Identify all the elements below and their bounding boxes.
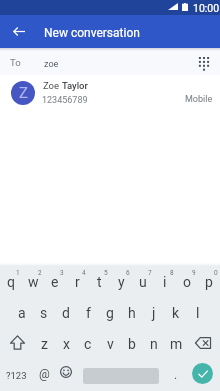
staticText: 2 bbox=[38, 269, 42, 277]
staticText: u bbox=[139, 274, 147, 290]
staticText: j bbox=[152, 305, 156, 321]
staticText: Z bbox=[19, 84, 28, 102]
button[interactable]: Shift bbox=[0, 328, 33, 359]
staticText: 6 bbox=[126, 269, 130, 277]
staticText: To bbox=[10, 57, 21, 68]
button[interactable]: Back bbox=[2, 15, 35, 48]
staticText: . bbox=[174, 368, 178, 382]
staticText: 7 bbox=[148, 269, 152, 277]
button[interactable]: Backspace bbox=[187, 328, 220, 359]
staticText: f bbox=[86, 305, 91, 321]
button[interactable]: v bbox=[99, 328, 121, 359]
staticText: 10:00 bbox=[193, 2, 220, 14]
staticText: Zoe bbox=[43, 80, 62, 91]
button[interactable]: o bbox=[176, 266, 198, 297]
staticText: s bbox=[40, 305, 48, 321]
button[interactable]: k bbox=[165, 297, 187, 328]
staticText: i bbox=[163, 274, 167, 290]
button[interactable]: w bbox=[22, 266, 44, 297]
button[interactable]: . bbox=[165, 359, 187, 391]
button[interactable]: n bbox=[143, 328, 165, 359]
button[interactable]: r bbox=[66, 266, 88, 297]
staticText: 1 bbox=[16, 269, 20, 277]
staticText: l bbox=[196, 305, 200, 321]
staticText: zoe bbox=[44, 59, 59, 70]
button[interactable]: @ bbox=[33, 359, 55, 391]
staticText: t bbox=[97, 274, 102, 290]
staticText: b bbox=[128, 336, 136, 352]
staticText: Mobile bbox=[185, 94, 213, 105]
button[interactable]: l bbox=[187, 297, 209, 328]
staticText: 8 bbox=[170, 269, 174, 277]
staticText: 9 bbox=[192, 269, 196, 277]
staticText: m bbox=[170, 336, 183, 352]
button[interactable]: h bbox=[121, 297, 143, 328]
staticText: @ bbox=[39, 367, 50, 381]
button[interactable]: q bbox=[0, 266, 22, 297]
button[interactable]: ?123 bbox=[0, 359, 33, 391]
staticText: 0 bbox=[214, 269, 218, 277]
button[interactable]: b bbox=[121, 328, 143, 359]
button[interactable]: e bbox=[44, 266, 66, 297]
staticText: y bbox=[118, 274, 125, 290]
button[interactable]: z bbox=[33, 328, 55, 359]
staticText: New conversation bbox=[44, 26, 140, 40]
staticText: k bbox=[172, 305, 180, 321]
staticText: o bbox=[183, 274, 191, 290]
staticText: ?123 bbox=[6, 370, 27, 381]
button[interactable]: s bbox=[33, 297, 55, 328]
staticText: p bbox=[205, 274, 213, 290]
button[interactable]: d bbox=[55, 297, 77, 328]
staticText: v bbox=[107, 336, 114, 352]
staticText: e bbox=[51, 274, 59, 290]
staticText: d bbox=[62, 305, 70, 321]
staticText: 123456789 bbox=[42, 95, 88, 106]
staticText: n bbox=[150, 336, 158, 352]
button[interactable]: j bbox=[143, 297, 165, 328]
button[interactable]: Z bbox=[0, 75, 220, 113]
staticText: g bbox=[106, 305, 114, 321]
button[interactable]: t bbox=[88, 266, 110, 297]
staticText: a bbox=[18, 305, 26, 321]
button[interactable]: f bbox=[77, 297, 99, 328]
button[interactable]: x bbox=[55, 328, 77, 359]
staticText: q bbox=[7, 274, 15, 290]
button[interactable]: i bbox=[154, 266, 176, 297]
staticText: w bbox=[28, 274, 39, 290]
button[interactable]: Emoji bbox=[55, 359, 77, 391]
staticText: z bbox=[41, 336, 48, 352]
staticText: c bbox=[84, 336, 92, 352]
staticText: 4 bbox=[82, 269, 86, 277]
staticText: 3 bbox=[60, 269, 64, 277]
button[interactable]: y bbox=[110, 266, 132, 297]
button[interactable]: Send bbox=[192, 363, 213, 384]
button[interactable]: c bbox=[77, 328, 99, 359]
button[interactable]: g bbox=[99, 297, 121, 328]
button[interactable]: m bbox=[165, 328, 187, 359]
staticText: x bbox=[63, 336, 70, 352]
staticText: h bbox=[128, 305, 136, 321]
staticText: Taylor bbox=[62, 80, 88, 91]
button[interactable]: a bbox=[11, 297, 33, 328]
button[interactable]: Dialpad bbox=[193, 48, 220, 75]
button[interactable]: u bbox=[132, 266, 154, 297]
staticText: 5 bbox=[104, 269, 108, 277]
staticText: r bbox=[75, 274, 80, 290]
button[interactable]: p bbox=[198, 266, 220, 297]
